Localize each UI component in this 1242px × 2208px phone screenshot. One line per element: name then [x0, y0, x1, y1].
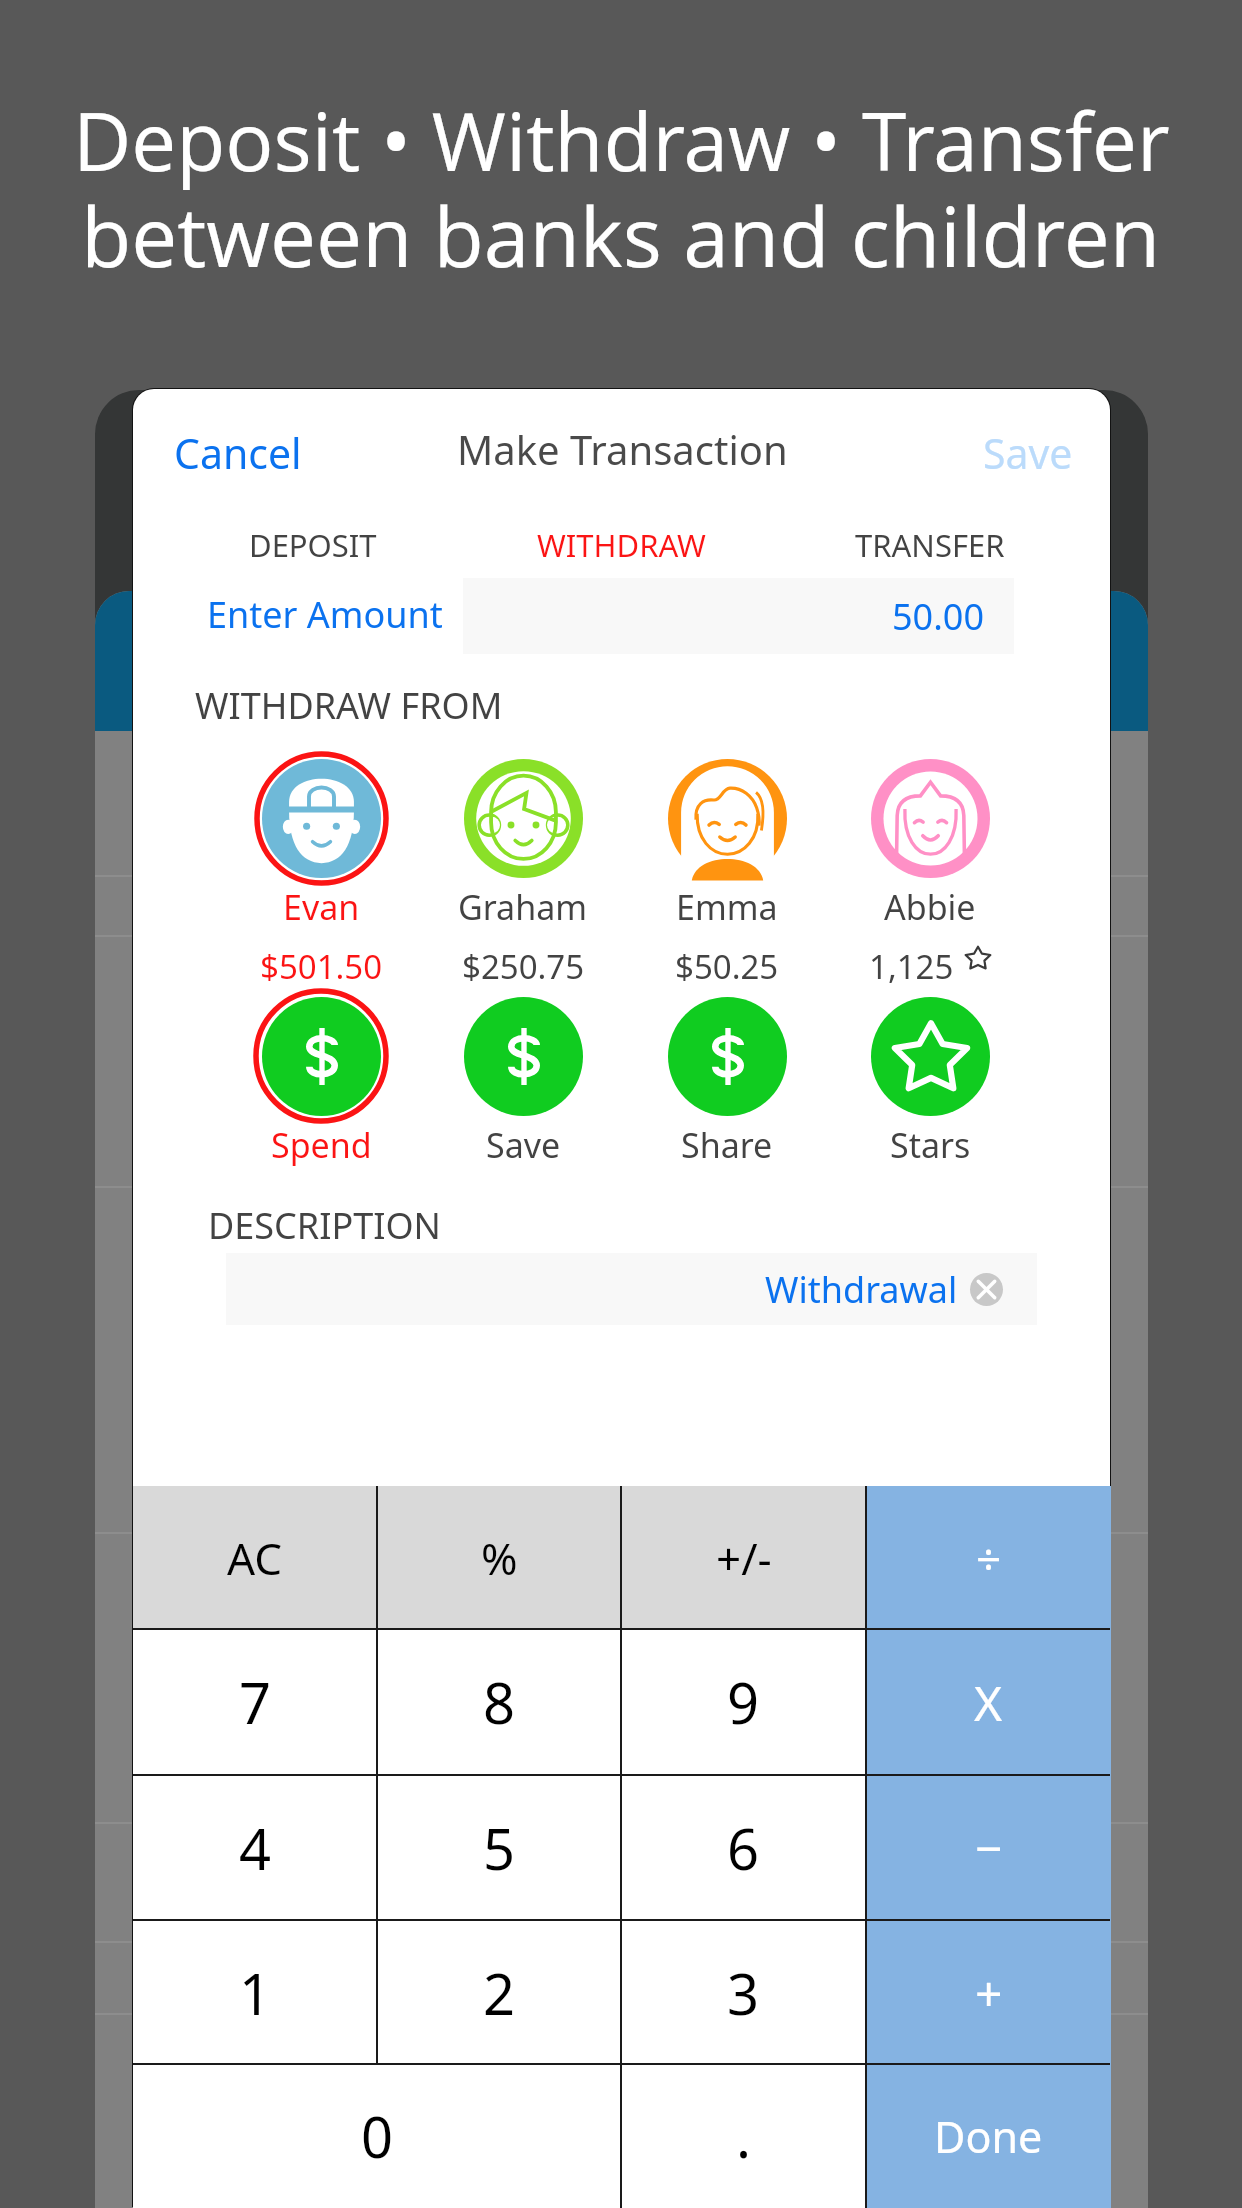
staticText: Save	[486, 1122, 561, 1168]
staticText: %	[481, 1528, 518, 1588]
button[interactable]: %	[377, 1486, 622, 1629]
button[interactable]: 9	[621, 1629, 866, 1775]
button[interactable]: Clear description	[970, 1273, 1003, 1306]
button[interactable]: 4	[133, 1775, 377, 1920]
staticText: 3	[727, 1955, 760, 2031]
staticText: −	[975, 1815, 1003, 1880]
button[interactable]: Spend	[222, 986, 420, 1186]
staticText: Done	[934, 2107, 1043, 2166]
staticText: 7	[239, 1664, 272, 1740]
staticText: Emma	[676, 884, 778, 930]
button[interactable]: 3	[621, 1920, 866, 2065]
button[interactable]: Stars	[831, 986, 1029, 1186]
staticText: Share	[681, 1122, 773, 1168]
staticText: Save	[983, 425, 1073, 481]
staticText: between banks and children	[81, 179, 1161, 291]
staticText: DESCRIPTION	[208, 1201, 441, 1250]
button[interactable]: WITHDRAW	[471, 512, 771, 578]
staticText: Evan	[283, 884, 360, 930]
staticText: 4	[239, 1810, 272, 1886]
button[interactable]: DEPOSIT	[163, 512, 463, 578]
staticText: TRANSFER	[855, 524, 1005, 566]
staticText: WITHDRAW FROM	[195, 681, 503, 730]
staticText: Abbie	[884, 884, 976, 930]
button[interactable]: −	[866, 1775, 1111, 1920]
staticText: 5	[483, 1810, 516, 1886]
staticText: 2	[483, 1955, 516, 2031]
staticText: +	[975, 1960, 1003, 2025]
button[interactable]: 1	[133, 1920, 377, 2065]
staticText: AC	[227, 1528, 283, 1588]
button[interactable]: 50.00	[463, 578, 1014, 654]
button[interactable]: Save	[959, 409, 1097, 497]
button[interactable]: Share	[628, 986, 826, 1186]
button[interactable]: TRANSFER	[780, 512, 1080, 578]
button[interactable]: Graham $250.75	[424, 748, 622, 986]
button[interactable]: Emma $50.25	[628, 748, 826, 986]
staticText: WITHDRAW	[537, 524, 706, 566]
staticText: $501.50	[260, 944, 383, 989]
staticText: 50.00	[892, 592, 985, 641]
button[interactable]: 2	[377, 1920, 622, 2065]
staticText: $250.75	[462, 944, 585, 989]
staticText: Graham	[458, 884, 588, 930]
staticText: X	[974, 1670, 1003, 1735]
button[interactable]: ÷	[866, 1486, 1111, 1629]
staticText: 1	[239, 1955, 272, 2031]
button[interactable]: Evan $501.50	[222, 748, 420, 986]
button[interactable]: +/-	[621, 1486, 866, 1629]
button[interactable]: 7	[133, 1629, 377, 1775]
staticText: +/-	[716, 1528, 772, 1588]
staticText: Deposit • Withdraw • Transfer	[73, 85, 1170, 194]
button[interactable]: .	[621, 2064, 866, 2208]
button[interactable]: 8	[377, 1629, 622, 1775]
button[interactable]: 5	[377, 1775, 622, 1920]
button[interactable]: 0	[133, 2064, 621, 2208]
staticText: Withdrawal	[765, 1265, 958, 1314]
staticText: .	[736, 2098, 752, 2174]
staticText: 1,125	[869, 944, 954, 989]
staticText: 9	[727, 1664, 760, 1740]
staticText: 8	[483, 1664, 516, 1740]
staticText: DEPOSIT	[249, 524, 377, 566]
staticText: Cancel	[174, 425, 302, 481]
button[interactable]: Done	[866, 2064, 1111, 2208]
staticText: 0	[361, 2098, 394, 2174]
staticText: Make Transaction	[457, 422, 788, 476]
staticText: ÷	[976, 1528, 1002, 1588]
button[interactable]: 6	[621, 1775, 866, 1920]
staticText: Spend	[271, 1122, 372, 1168]
button[interactable]: +	[866, 1920, 1111, 2065]
button[interactable]: Save	[424, 986, 622, 1186]
staticText: Stars	[890, 1122, 971, 1168]
staticText: 6	[727, 1810, 760, 1886]
button[interactable]: Cancel	[150, 409, 326, 497]
button[interactable]: AC	[133, 1486, 377, 1629]
button[interactable]: Abbie 1,125	[831, 748, 1029, 986]
button[interactable]: Withdrawal	[226, 1253, 1037, 1325]
staticText: $50.25	[675, 944, 779, 989]
button[interactable]: X	[866, 1629, 1111, 1775]
staticText: Enter Amount	[207, 590, 443, 639]
